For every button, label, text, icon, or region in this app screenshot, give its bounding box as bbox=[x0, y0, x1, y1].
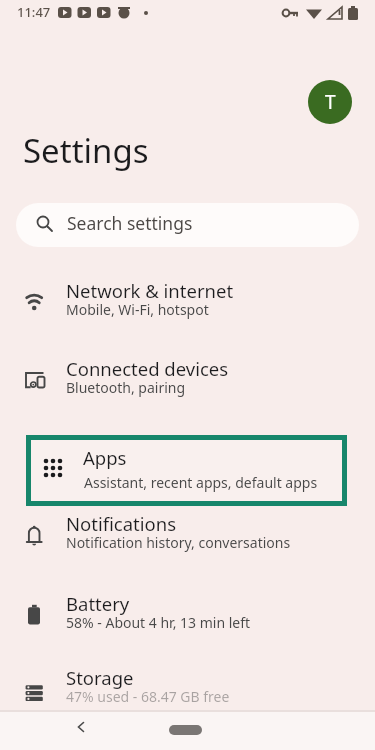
staticText: 47% used - 68.47 GB free bbox=[66, 687, 230, 706]
staticText: Settings bbox=[23, 128, 149, 173]
staticText: Connected devices bbox=[66, 356, 229, 381]
button[interactable]: Connected devices bbox=[0, 345, 375, 423]
button[interactable]: Apps bbox=[31, 440, 342, 501]
staticText: Battery bbox=[66, 591, 130, 616]
button[interactable]: Battery bbox=[0, 580, 375, 658]
staticText: 58% - About 4 hr, 13 min left bbox=[66, 613, 251, 632]
button[interactable] bbox=[169, 725, 202, 735]
staticText: Notifications bbox=[66, 511, 177, 536]
staticText: Mobile, Wi-Fi, hotspot bbox=[66, 300, 209, 319]
staticText: Network & internet bbox=[66, 278, 234, 303]
button[interactable]: Storage bbox=[0, 654, 375, 732]
button[interactable] bbox=[74, 720, 88, 734]
button[interactable]: Network & internet bbox=[0, 267, 375, 345]
staticText: Storage bbox=[66, 665, 134, 690]
staticText: Notification history, conversations bbox=[66, 533, 291, 552]
button[interactable]: T bbox=[308, 80, 352, 124]
staticText: 11:47 bbox=[17, 3, 51, 21]
staticText: Assistant, recent apps, default apps bbox=[84, 473, 318, 492]
button[interactable]: Search settings bbox=[16, 203, 359, 247]
staticText: Bluetooth, pairing bbox=[66, 378, 186, 397]
staticText: Search settings bbox=[67, 211, 193, 235]
button[interactable]: Notifications bbox=[0, 500, 375, 578]
staticText: T bbox=[325, 89, 336, 115]
staticText: Apps bbox=[83, 445, 127, 470]
